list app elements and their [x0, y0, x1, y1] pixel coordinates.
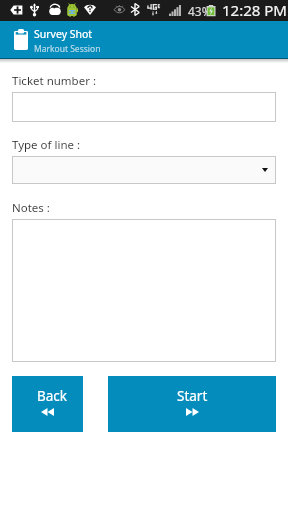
button[interactable]: Notes input — [12, 219, 276, 362]
staticText: Notes : — [12, 200, 50, 216]
staticText: Survey Shot — [34, 27, 93, 41]
staticText: Back — [37, 387, 68, 405]
other: Survey — [14, 29, 28, 50]
staticText: Markout Session — [34, 43, 101, 55]
staticText: Start — [177, 387, 208, 405]
button[interactable]: Ticket number input — [12, 92, 276, 122]
staticText: 12:28 PM — [222, 0, 287, 20]
button[interactable]: Back — [12, 376, 83, 432]
staticText: Ticket number : — [12, 73, 96, 89]
staticText: 43% — [188, 3, 212, 19]
staticText: Type of line : — [12, 137, 81, 153]
button[interactable]: Start — [108, 376, 276, 432]
button[interactable]: Type of line selector — [12, 156, 276, 184]
